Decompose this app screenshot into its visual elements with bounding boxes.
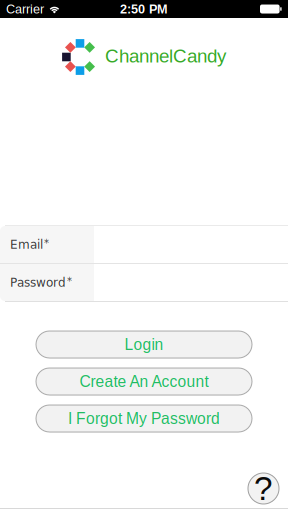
button[interactable]: Email xyxy=(0,226,288,263)
staticText: ChannelCandy xyxy=(105,45,226,66)
staticText: 2:50 PM xyxy=(120,2,168,16)
staticText: * xyxy=(44,237,49,249)
staticText: * xyxy=(67,275,72,287)
staticText: Carrier xyxy=(6,2,44,16)
staticText: I Forgot My Password xyxy=(68,410,220,427)
staticText: Create An Account xyxy=(79,373,208,390)
button[interactable]: I Forgot My Password xyxy=(36,405,252,432)
button[interactable]: Help xyxy=(248,473,279,504)
staticText: Login xyxy=(124,336,163,353)
staticText: ? xyxy=(254,470,273,507)
staticText: Email xyxy=(10,237,43,251)
button[interactable]: Login xyxy=(36,331,252,358)
button[interactable]: Create An Account xyxy=(36,368,252,395)
button[interactable]: Password xyxy=(0,264,288,301)
staticText: Password xyxy=(10,275,66,289)
